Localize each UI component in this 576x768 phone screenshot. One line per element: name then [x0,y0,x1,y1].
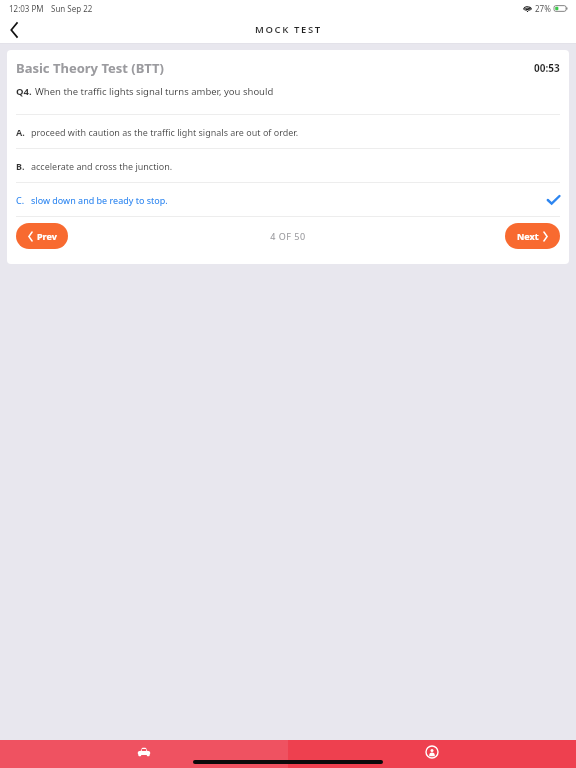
staticText: 4 OF 50 [270,230,306,242]
staticText: Sun Sep 22 [51,3,93,14]
button[interactable]: Practice [0,740,288,768]
button[interactable]: C. [7,183,569,216]
staticText: 27% [535,3,551,14]
staticText: Basic Theory Test (BTT) [16,59,165,77]
staticText: Next [517,230,539,242]
button[interactable]: Prev [16,223,68,249]
staticText: C. [16,194,25,206]
button[interactable]: B. [7,149,569,182]
staticText: When the traffic lights signal turns amb… [35,85,274,98]
button[interactable]: Back [0,16,28,43]
staticText: Q4. [16,85,32,98]
staticText: MOCK TEST [255,23,322,36]
staticText: Prev [37,230,57,242]
staticText: A. [16,126,25,138]
staticText: 12:03 PM [9,3,44,14]
button[interactable]: A. [7,115,569,148]
button[interactable]: Next [505,223,560,249]
staticText: slow down and be ready to stop. [31,194,168,206]
staticText: 00:53 [534,61,560,75]
staticText: proceed with caution as the traffic ligh… [31,126,299,138]
button[interactable]: Profile [288,740,576,768]
staticText: B. [16,160,25,172]
staticText: accelerate and cross the junction. [31,160,173,172]
